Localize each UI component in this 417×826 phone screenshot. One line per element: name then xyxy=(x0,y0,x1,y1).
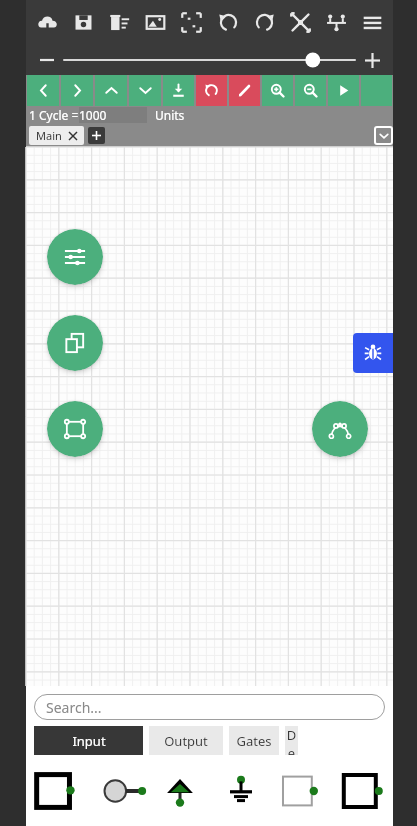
button[interactable]: Add tab xyxy=(88,127,105,144)
button[interactable]: Increase xyxy=(359,47,385,73)
button[interactable]: Down xyxy=(129,75,161,106)
staticText: 1 Cycle = xyxy=(29,107,79,123)
button[interactable]: Image xyxy=(140,7,170,37)
button[interactable]: Zoom out xyxy=(295,75,326,106)
button[interactable]: Save xyxy=(68,7,98,37)
button[interactable]: Zoom in xyxy=(262,75,293,106)
button[interactable]: Debug xyxy=(353,333,393,373)
button[interactable]: Constant xyxy=(332,767,393,815)
button[interactable]: De xyxy=(285,726,298,755)
button[interactable] xyxy=(60,50,359,70)
button[interactable]: Edit xyxy=(229,75,260,106)
staticText: Gates xyxy=(236,732,272,750)
button[interactable]: Gates xyxy=(229,726,279,755)
button[interactable]: Redo xyxy=(249,7,279,37)
button[interactable]: 1000 xyxy=(79,107,147,123)
button[interactable]: Expand xyxy=(374,126,393,145)
button[interactable]: Search... xyxy=(34,694,385,720)
button[interactable]: Properties xyxy=(47,229,103,285)
button[interactable]: Output xyxy=(149,726,223,755)
button[interactable]: Input xyxy=(34,726,143,755)
button[interactable]: Input 1 xyxy=(26,767,88,815)
button[interactable]: Fullscreen xyxy=(285,7,315,37)
button[interactable]: Button xyxy=(88,767,149,815)
button[interactable]: Output xyxy=(271,767,332,815)
button[interactable]: Reset xyxy=(196,75,227,106)
staticText: 1000 xyxy=(79,107,107,123)
button[interactable]: Up xyxy=(95,75,127,106)
staticText: De xyxy=(285,726,298,755)
staticText: Units xyxy=(155,107,185,123)
button[interactable]: Undo xyxy=(213,7,243,37)
staticText: Output xyxy=(164,732,208,750)
button[interactable]: Previous xyxy=(27,75,59,106)
button[interactable]: Decrease xyxy=(34,47,60,73)
button[interactable]: Power xyxy=(149,767,210,815)
button[interactable]: Menu xyxy=(357,7,387,37)
button[interactable]: Select xyxy=(47,401,103,457)
button[interactable]: Delete xyxy=(104,7,134,37)
staticText: Input xyxy=(72,732,106,750)
button[interactable]: Fit xyxy=(176,7,206,37)
button[interactable]: Wire xyxy=(312,401,368,457)
button[interactable]: Next xyxy=(61,75,93,106)
button[interactable]: Ground xyxy=(210,767,271,815)
staticText: Main xyxy=(36,128,62,143)
button[interactable]: Copy xyxy=(47,315,103,371)
staticText: Search... xyxy=(46,698,102,717)
button[interactable]: Main xyxy=(36,126,77,145)
button[interactable]: Download xyxy=(163,75,194,106)
button[interactable]: Play xyxy=(328,75,359,106)
button[interactable]: Split xyxy=(321,7,351,37)
button[interactable]: Upload xyxy=(32,7,62,37)
